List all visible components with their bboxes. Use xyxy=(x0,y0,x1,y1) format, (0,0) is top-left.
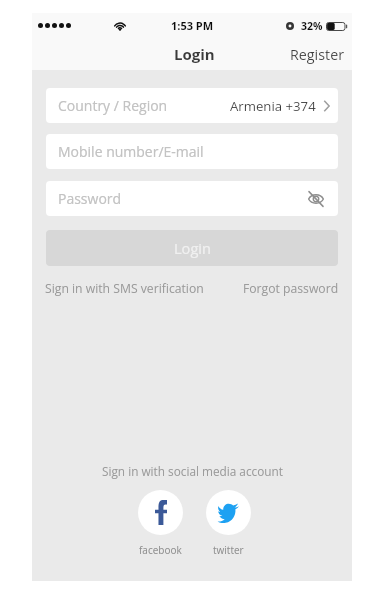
staticText: Country / Region xyxy=(58,96,168,115)
button[interactable]: Password xyxy=(46,181,338,216)
button[interactable]: facebook xyxy=(138,490,183,557)
staticText: Sign in with SMS verification xyxy=(45,280,204,297)
staticText: Mobile number/E-mail xyxy=(58,142,204,161)
button[interactable]: twitter xyxy=(206,490,251,557)
button[interactable]: Forgot password xyxy=(243,280,339,297)
staticText: Register xyxy=(290,45,345,64)
staticText: Forgot password xyxy=(243,280,339,297)
staticText: 32% xyxy=(301,19,323,33)
staticText: Sign in with social media account xyxy=(102,463,283,479)
button[interactable]: Register xyxy=(283,40,352,69)
button[interactable]: Show password xyxy=(303,186,329,212)
button[interactable]: Mobile number/E-mail xyxy=(46,134,338,169)
button[interactable]: Country / Region xyxy=(46,88,338,123)
staticText: facebook xyxy=(139,543,182,557)
staticText: twitter xyxy=(213,543,244,557)
staticText: Armenia +374 xyxy=(230,97,316,115)
staticText: Password xyxy=(58,189,122,208)
staticText: 1:53 PM xyxy=(171,18,214,33)
staticText: Login xyxy=(174,44,215,64)
button[interactable]: Sign in with SMS verification xyxy=(45,280,204,297)
staticText: Login xyxy=(174,238,211,258)
